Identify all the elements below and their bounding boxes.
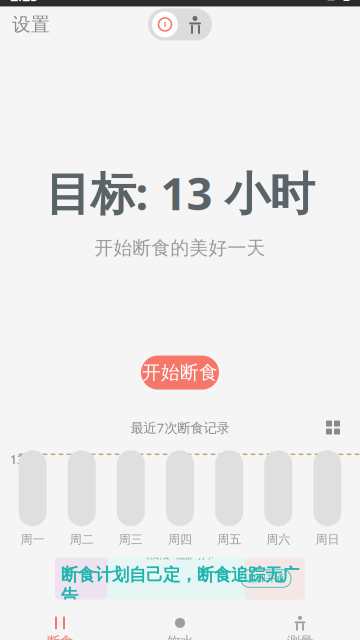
staticText: 最近7次断食记录 (130, 419, 229, 436)
button[interactable]: 断食 (0, 611, 120, 640)
button[interactable]: 设置 (4, 7, 58, 42)
staticText: 周六 (266, 532, 290, 547)
staticText: 周五 (217, 532, 241, 547)
staticText: 13h (10, 452, 32, 467)
button[interactable]: 断食模式 (150, 10, 180, 38)
staticText: 饮水 (167, 633, 193, 640)
staticText: 周二 (70, 532, 94, 547)
staticText: 立即开通 (248, 573, 284, 584)
staticText: 周日 (315, 532, 339, 547)
staticText: 断食 (47, 633, 73, 640)
staticText: 周四 (168, 532, 192, 547)
staticText: 测量 (287, 633, 313, 640)
button[interactable]: 测量模式 (180, 10, 210, 38)
button[interactable]: 饮水 (120, 611, 240, 640)
button[interactable]: 广告：断食计划自己定 (55, 558, 305, 600)
staticText: 轻断食 · 减脂 · 打卡 (146, 550, 214, 561)
staticText: 2:25 (10, 0, 38, 5)
staticText: 周三 (119, 532, 143, 547)
button[interactable]: 展开图表 (320, 415, 346, 441)
staticText: 开始断食 (142, 361, 218, 384)
staticText: 断食计划自己定，断食追踪无广告 (61, 564, 299, 607)
button[interactable]: 开始断食 (141, 356, 219, 390)
staticText: 开始断食的美好一天 (94, 237, 265, 259)
staticText: 目标: 13 小时 (45, 162, 314, 223)
staticText: 周一 (21, 532, 45, 547)
staticText: 设置 (12, 13, 50, 36)
button[interactable]: 测量 (240, 611, 360, 640)
